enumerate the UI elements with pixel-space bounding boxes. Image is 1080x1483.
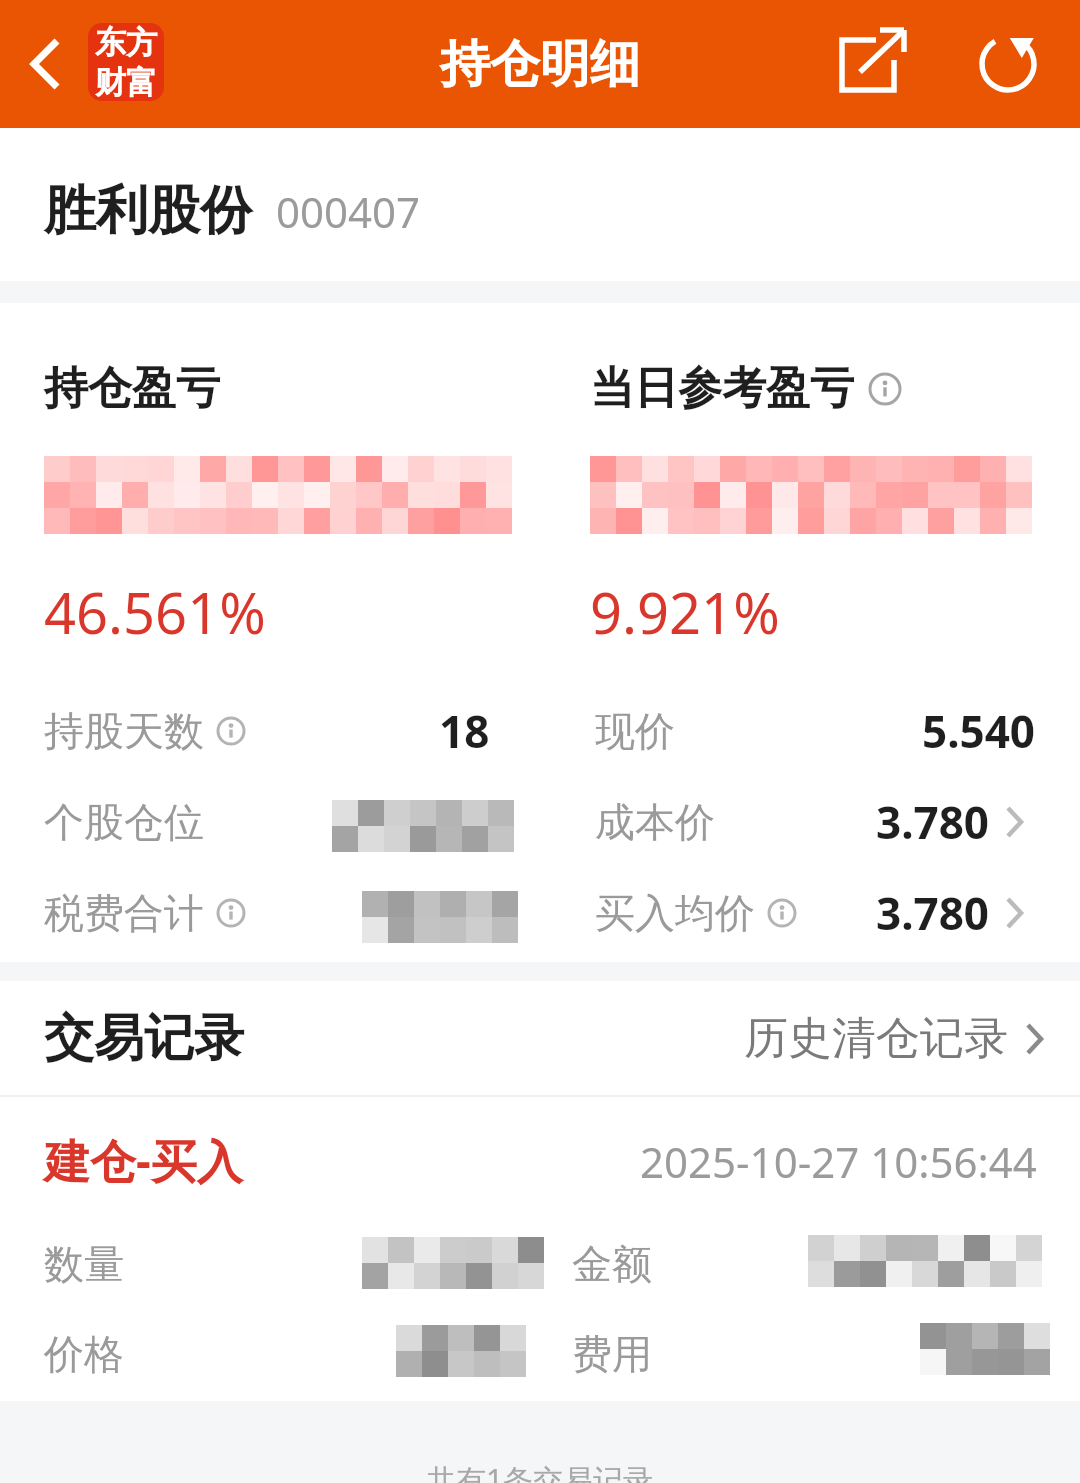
staticText: 46.561% [44, 574, 266, 650]
staticText: 数量 [44, 1239, 124, 1289]
staticText: 现价 [595, 706, 675, 756]
button[interactable]: 成本价 [595, 783, 715, 861]
staticText: 金额 [572, 1239, 652, 1289]
button[interactable]: 东方财富 [88, 23, 164, 101]
button[interactable]: 建仓-买入 [0, 1097, 1080, 1401]
staticText: 胜利股份 [44, 178, 252, 244]
staticText: 价格 [44, 1329, 124, 1379]
button[interactable]: 现价 [595, 692, 675, 770]
button[interactable]: 买入均价 [595, 874, 797, 952]
staticText: 当日参考盈亏 [590, 361, 854, 416]
button[interactable]: 税费合计 [44, 874, 246, 952]
staticText: 东方 [95, 23, 157, 62]
staticText: 持股天数 [44, 706, 204, 756]
staticText: 税费合计 [44, 888, 204, 938]
staticText: 持仓盈亏 [44, 361, 220, 416]
button[interactable]: Share [824, 20, 912, 108]
button[interactable]: 个股仓位 [44, 783, 204, 861]
button[interactable]: Back [8, 26, 84, 102]
staticText: 3.780 [876, 883, 990, 943]
staticText: 2025-10-27 10:56:44 [640, 1133, 1037, 1190]
staticText: 个股仓位 [44, 797, 204, 847]
staticText: 历史清仓记录 [744, 1011, 1008, 1066]
staticText: 3.780 [876, 792, 990, 852]
staticText: 000407 [276, 183, 421, 240]
staticText: 持仓明细 [440, 33, 640, 96]
button[interactable]: 持股天数 [44, 692, 246, 770]
button[interactable]: Refresh [964, 20, 1052, 108]
button[interactable]: 当日参考盈亏 [590, 361, 1020, 650]
staticText: 财富 [95, 63, 157, 101]
button[interactable]: 历史清仓记录 [744, 1011, 1054, 1066]
staticText: 9.921% [590, 574, 780, 650]
staticText: 共有1条交易记录 [426, 1459, 654, 1483]
staticText: 成本价 [595, 797, 715, 847]
staticText: 5.540 [922, 701, 1036, 761]
staticText: 交易记录 [44, 1007, 244, 1070]
staticText: 18 [439, 701, 490, 761]
button[interactable]: 胜利股份 [0, 128, 1080, 281]
button[interactable]: 持仓盈亏 [44, 361, 492, 650]
staticText: 费用 [572, 1329, 652, 1379]
staticText: 建仓-买入 [44, 1129, 243, 1192]
staticText: 买入均价 [595, 888, 755, 938]
